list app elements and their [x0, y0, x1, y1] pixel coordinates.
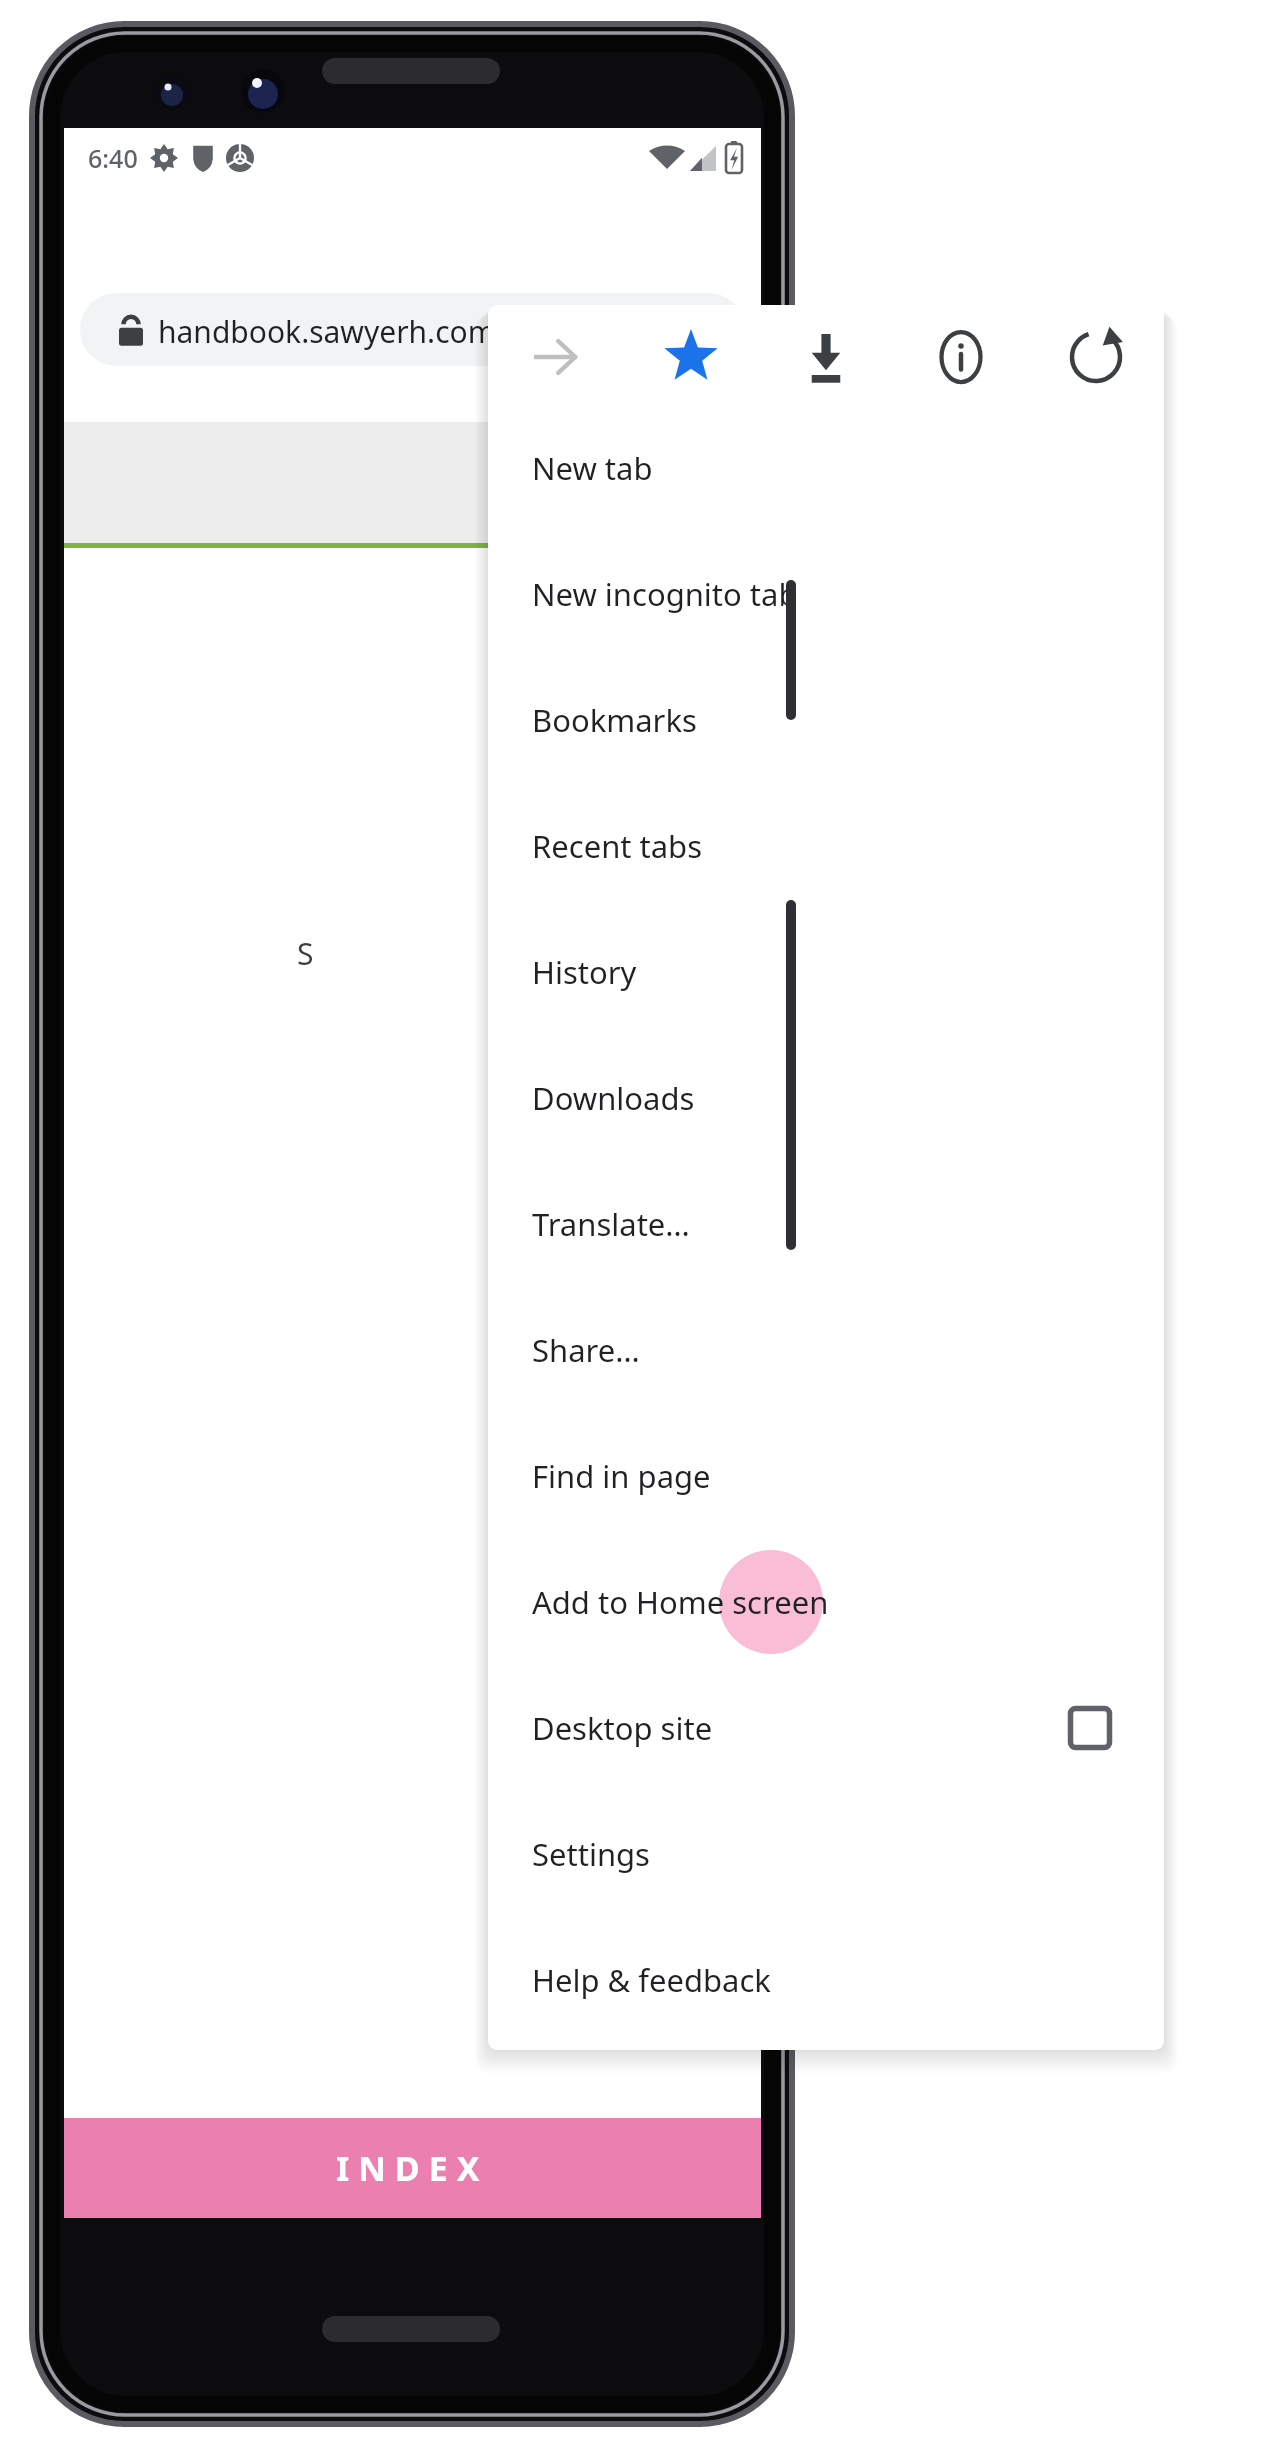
button[interactable]: Bookmark [624, 305, 759, 405]
staticText: History [532, 951, 637, 993]
button[interactable]: Add to Home screen [488, 1539, 1164, 1665]
button[interactable]: handbook.sawyerh.com [80, 293, 745, 366]
button[interactable]: Desktop site [488, 1665, 1164, 1791]
staticText: New incognito tab [532, 573, 798, 615]
button[interactable]: Download [759, 305, 894, 405]
button[interactable]: New incognito tab [488, 531, 1164, 657]
staticText: Bookmarks [532, 699, 697, 741]
staticText: Desktop site [532, 1707, 713, 1749]
staticText: 6:40 [88, 141, 138, 175]
button[interactable]: Settings [488, 1791, 1164, 1917]
button[interactable]: History [488, 909, 1164, 1035]
button[interactable]: Page info [894, 305, 1029, 405]
staticText: Find in page [532, 1455, 711, 1497]
staticText: Recent tabs [532, 825, 703, 867]
staticText: Settings [532, 1833, 650, 1875]
staticText: handbook.sawyerh.com [158, 311, 496, 352]
button[interactable]: New tab [488, 405, 1164, 531]
staticText: Add to Home screen [532, 1581, 829, 1623]
button[interactable]: Bookmarks [488, 657, 1164, 783]
button[interactable]: Reload [1029, 305, 1164, 405]
staticText: Help & feedback [532, 1959, 771, 2001]
button[interactable]: Find in page [488, 1413, 1164, 1539]
staticText: S [297, 933, 314, 974]
button[interactable]: Translate… [488, 1161, 1164, 1287]
staticText: INDEX [336, 2145, 489, 2191]
button[interactable]: Forward [488, 305, 624, 405]
button[interactable]: Share… [488, 1287, 1164, 1413]
staticText: Share… [532, 1329, 640, 1371]
staticText: Downloads [532, 1077, 695, 1119]
staticText: Translate… [532, 1203, 690, 1245]
button[interactable]: Downloads [488, 1035, 1164, 1161]
button[interactable]: Help & feedback [488, 1917, 1164, 2043]
button[interactable]: Recent tabs [488, 783, 1164, 909]
staticText: New tab [532, 447, 653, 489]
button[interactable]: INDEX [64, 2118, 761, 2218]
